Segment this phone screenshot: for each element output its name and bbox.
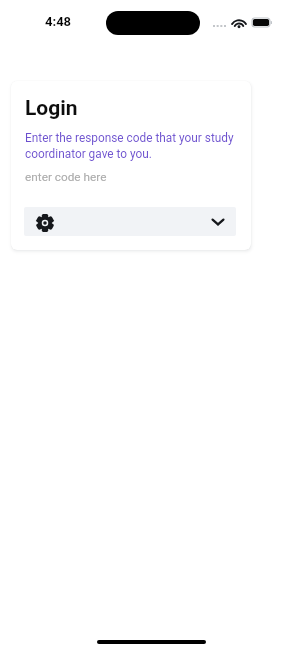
staticText: Login	[25, 96, 78, 121]
button[interactable]: enter code here	[24, 166, 236, 188]
staticText: enter code here	[25, 170, 107, 184]
staticText: Enter the response code that your study …	[25, 131, 234, 161]
staticText: 4:48	[45, 14, 72, 29]
other: Battery full	[252, 18, 272, 27]
other: Wi-Fi connected	[232, 18, 246, 27]
button[interactable]: Open settings menu	[24, 207, 236, 236]
other: Cellular signal	[213, 25, 226, 27]
